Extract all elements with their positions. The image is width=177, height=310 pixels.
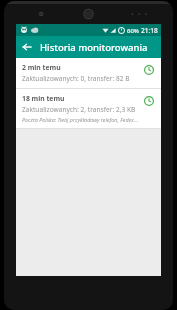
button[interactable]: Back bbox=[18, 38, 36, 56]
button[interactable]: Szczegóły synchronizacji bbox=[142, 94, 156, 108]
button[interactable]: 2 min temu bbox=[16, 58, 161, 88]
staticText: 60% bbox=[127, 27, 139, 35]
staticText: 21:18 bbox=[141, 26, 158, 35]
staticText: Zaktualizowanych: 2, transfer: 2,3 KB bbox=[22, 105, 136, 114]
staticText: 2 min temu bbox=[22, 63, 61, 72]
button[interactable]: Szczegóły synchronizacji bbox=[142, 63, 156, 77]
button[interactable]: 18 min temu bbox=[16, 89, 161, 128]
staticText: Zaktualizowanych: 0, transfer: 82 B bbox=[22, 74, 130, 83]
staticText: Historia monitorowania bbox=[40, 41, 148, 54]
staticText: 18 min temu bbox=[22, 94, 65, 103]
staticText: Poczta Polska: Twój przykładowy telefon,… bbox=[22, 116, 139, 123]
